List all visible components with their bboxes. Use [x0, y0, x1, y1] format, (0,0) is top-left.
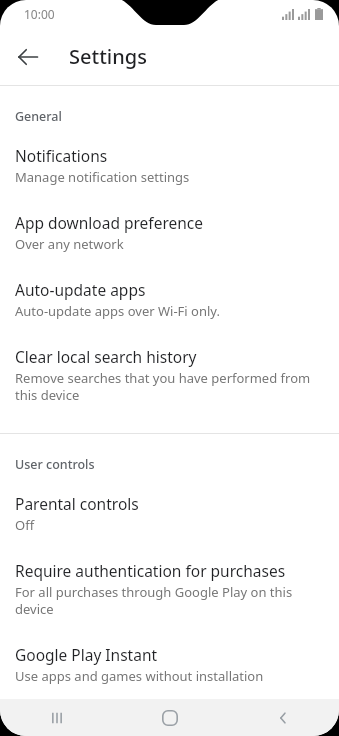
staticText: Remove searches that you have performed …: [15, 369, 321, 404]
staticText: Settings: [69, 43, 147, 70]
staticText: Over any network: [15, 235, 124, 253]
button[interactable]: Recent apps: [0, 699, 113, 736]
button[interactable]: Require authentication for purchases: [0, 548, 339, 632]
button[interactable]: Google Play Instant: [0, 632, 339, 699]
button[interactable]: Parental controls: [0, 481, 339, 548]
button[interactable]: Auto-update apps: [0, 267, 339, 334]
staticText: Manage notification settings: [15, 168, 190, 186]
staticText: Notifications: [15, 145, 108, 166]
button[interactable]: Clear local search history: [0, 334, 339, 418]
staticText: Auto-update apps over Wi-Fi only.: [15, 302, 220, 320]
staticText: Off: [15, 516, 35, 534]
button[interactable]: Back: [8, 37, 48, 77]
staticText: Auto-update apps: [15, 279, 146, 300]
staticText: Parental controls: [15, 493, 139, 514]
staticText: For all purchases through Google Play on…: [15, 583, 321, 618]
staticText: General: [15, 108, 62, 125]
button[interactable]: Back: [226, 699, 339, 736]
staticText: Google Play Instant: [15, 644, 158, 665]
staticText: Require authentication for purchases: [15, 560, 286, 581]
button[interactable]: App download preference: [0, 200, 339, 267]
staticText: App download preference: [15, 212, 204, 233]
button[interactable]: Notifications: [0, 133, 339, 200]
staticText: Use apps and games without installation: [15, 667, 264, 685]
button[interactable]: Home: [113, 699, 226, 736]
staticText: Clear local search history: [15, 346, 197, 367]
staticText: 10:00: [24, 6, 55, 22]
staticText: User controls: [15, 456, 95, 473]
